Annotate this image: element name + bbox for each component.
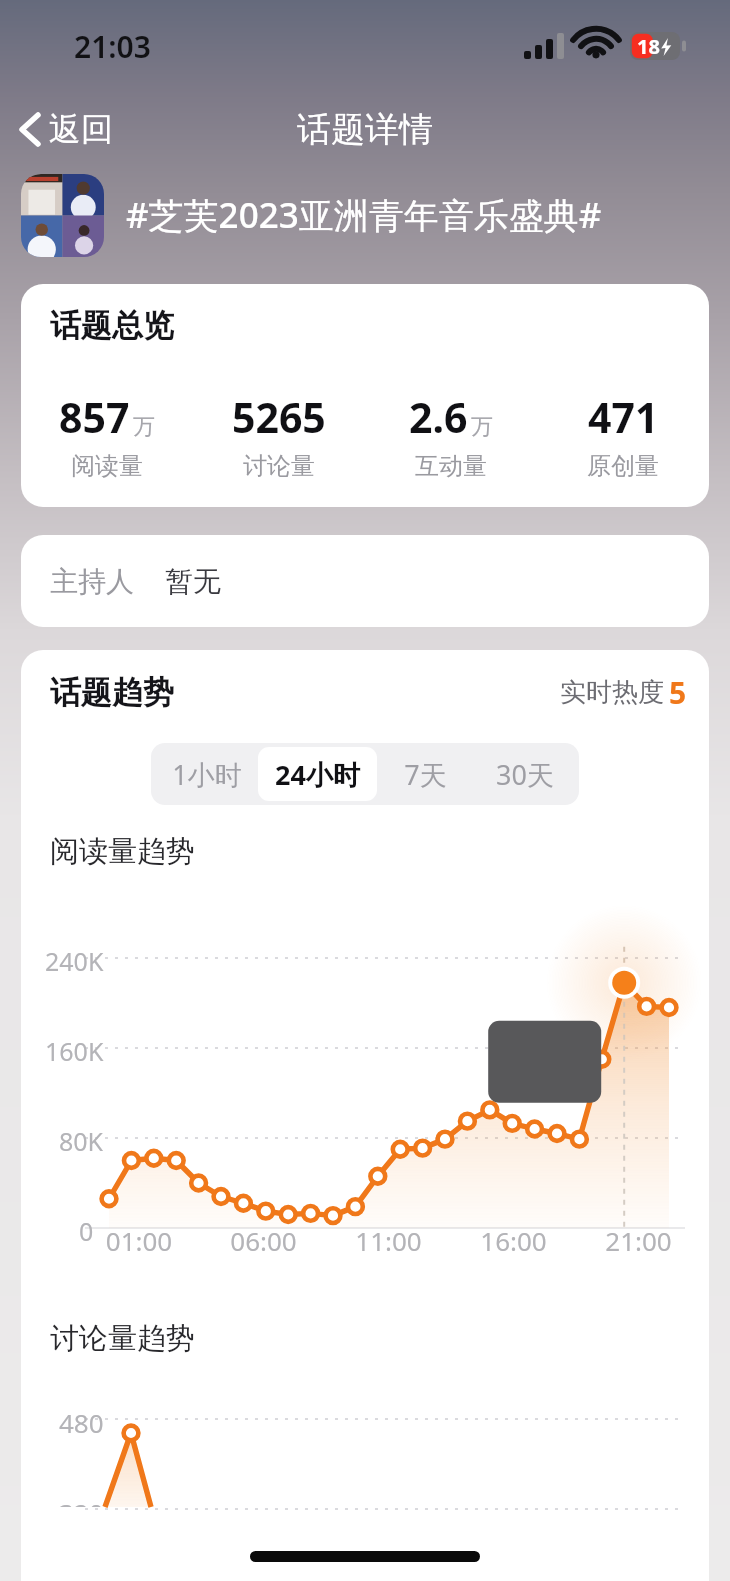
- button[interactable]: 1小时: [155, 747, 258, 801]
- staticText: 06:00: [201, 1223, 326, 1258]
- staticText: 21:00: [576, 1223, 701, 1258]
- staticText: 万: [133, 413, 155, 441]
- staticText: 16:00: [451, 1223, 576, 1258]
- staticText: 24小时: [275, 756, 360, 793]
- staticText: 讨论量: [243, 451, 315, 481]
- staticText: 原创量: [587, 451, 659, 481]
- staticText: 480: [59, 1405, 104, 1440]
- button[interactable]: 7天: [377, 747, 474, 801]
- staticText: 240K: [45, 944, 104, 978]
- staticText: 话题趋势: [50, 673, 174, 712]
- staticText: 217.526: [359, 1095, 456, 1130]
- button[interactable]: 返回: [0, 101, 131, 157]
- button[interactable]: 24小时: [258, 747, 377, 801]
- staticText: 7天: [404, 756, 447, 793]
- staticText: 话题详情: [297, 108, 433, 151]
- button[interactable]: #芝芙2023亚洲青年音乐盛典#: [0, 166, 730, 264]
- staticText: 2.6: [409, 389, 468, 445]
- staticText: 话题总览: [50, 306, 174, 345]
- staticText: 11:00: [326, 1223, 451, 1258]
- staticText: 21:03: [74, 26, 151, 67]
- staticText: 160K: [45, 1034, 104, 1068]
- staticText: 阅读量趋势: [50, 833, 195, 870]
- staticText: 主持人: [50, 564, 134, 599]
- button[interactable]: 主持人: [21, 535, 709, 627]
- staticText: 5: [669, 672, 687, 713]
- button[interactable]: 话题总览: [21, 284, 709, 507]
- staticText: 实时热度: [560, 676, 664, 709]
- staticText: 5265: [232, 389, 326, 445]
- staticText: 0: [79, 1214, 94, 1248]
- staticText: 857: [59, 389, 130, 445]
- staticText: 18: [637, 33, 660, 60]
- staticText: 1小时: [172, 756, 242, 793]
- staticText: 阅读量: [71, 451, 143, 481]
- staticText: 471: [588, 389, 659, 445]
- staticText: 01:00: [77, 1223, 201, 1258]
- staticText: 互动量: [415, 451, 487, 481]
- staticText: 万: [471, 413, 493, 441]
- staticText: 320: [59, 1495, 104, 1507]
- staticText: 暂无: [165, 564, 221, 599]
- staticText: 30天: [496, 756, 554, 793]
- staticText: 讨论量趋势: [50, 1320, 195, 1357]
- staticText: #芝芙2023亚洲青年音乐盛典#: [126, 191, 602, 239]
- button[interactable]: 30天: [474, 747, 575, 801]
- staticText: 80K: [59, 1124, 104, 1158]
- button[interactable]: 实时热度: [560, 672, 687, 713]
- staticText: 返回: [49, 109, 113, 149]
